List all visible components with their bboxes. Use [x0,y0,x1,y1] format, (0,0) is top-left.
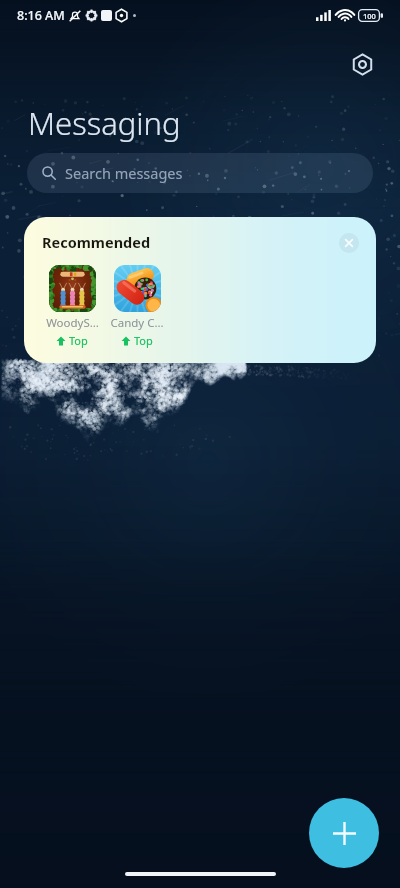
button[interactable]: Candy C… [108,265,166,348]
staticText: 8:16 AM [17,7,65,24]
button[interactable]: Recommended [24,217,376,363]
staticText: 100 [363,11,376,21]
staticText: Top [134,333,153,348]
button[interactable]: New message [309,798,379,868]
staticText: Search messages [65,163,183,183]
button[interactable]: Settings [344,46,381,83]
staticText: Candy C… [110,315,164,331]
staticText: Messaging [28,102,181,144]
button[interactable]: Search messages [27,153,373,193]
button[interactable]: Dismiss [335,229,363,257]
staticText: Top [69,333,88,348]
staticText: WoodyS… [46,315,99,331]
button[interactable]: WoodyS… [43,265,101,348]
staticText: Recommended [42,232,151,252]
